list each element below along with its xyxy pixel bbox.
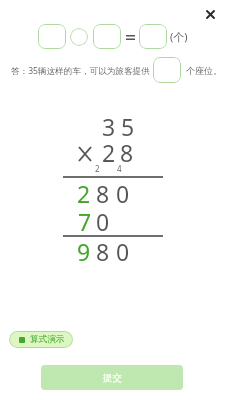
button[interactable]	[38, 24, 66, 49]
button[interactable]: 提交	[41, 365, 183, 390]
button[interactable]	[153, 57, 181, 83]
staticText: 2	[77, 178, 91, 209]
staticText: 8	[96, 236, 110, 267]
button[interactable]	[93, 24, 121, 49]
staticText: 7	[78, 206, 92, 237]
staticText: 4	[117, 163, 122, 174]
staticText: (个)	[170, 29, 188, 44]
button[interactable]	[139, 24, 167, 49]
button[interactable]: Close	[198, 2, 222, 27]
button[interactable]: 算式演示	[9, 331, 73, 348]
staticText: 0	[116, 236, 130, 267]
staticText: 0	[96, 206, 110, 237]
staticText: 5	[121, 111, 135, 142]
staticText: 3	[102, 111, 116, 142]
staticText: 提交	[103, 372, 122, 384]
staticText: 2	[95, 163, 100, 174]
button[interactable]	[70, 28, 88, 46]
staticText: 8	[96, 178, 110, 209]
staticText: 个座位。	[186, 65, 222, 76]
staticText: 答：35辆这样的车，可以为旅客提供	[11, 65, 150, 77]
staticText: 8	[120, 137, 134, 168]
staticText: 9	[77, 236, 91, 267]
staticText: 2	[102, 137, 116, 168]
staticText: 0	[116, 178, 130, 209]
staticText: 算式演示	[30, 334, 65, 345]
